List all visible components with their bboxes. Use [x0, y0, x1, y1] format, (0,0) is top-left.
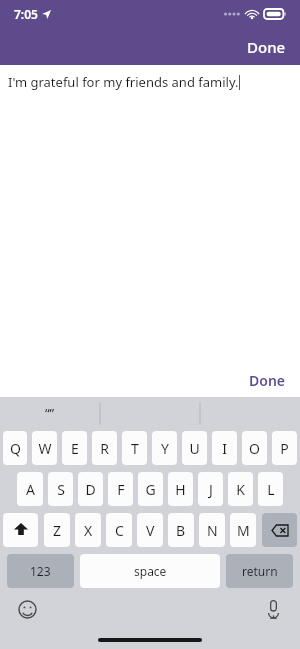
- staticText: N: [207, 521, 218, 540]
- button[interactable]: I: [212, 431, 237, 465]
- button[interactable]: A: [17, 472, 43, 506]
- button[interactable]: X: [75, 513, 101, 547]
- staticText: return: [242, 563, 278, 579]
- button[interactable]: Shift: [3, 513, 38, 547]
- button[interactable]: J: [198, 472, 223, 506]
- button[interactable]: E: [62, 431, 87, 465]
- button[interactable]: D: [78, 472, 103, 506]
- staticText: O: [249, 439, 260, 458]
- button[interactable]: “”: [0, 397, 100, 429]
- staticText: M: [237, 521, 250, 540]
- button[interactable]: M: [230, 513, 256, 547]
- button[interactable]: Z: [44, 513, 70, 547]
- staticText: Q: [10, 439, 21, 458]
- staticText: U: [189, 439, 200, 458]
- button[interactable]: Dictate: [256, 592, 290, 626]
- button[interactable]: T: [122, 431, 147, 465]
- button[interactable]: B: [168, 513, 194, 547]
- staticText: 7:05: [14, 6, 38, 22]
- staticText: J: [209, 480, 213, 499]
- staticText: Done: [249, 371, 286, 390]
- staticText: S: [57, 480, 65, 499]
- staticText: A: [26, 480, 35, 499]
- staticText: P: [280, 439, 289, 458]
- button[interactable]: Done: [233, 29, 300, 65]
- staticText: Y: [161, 439, 169, 458]
- staticText: E: [71, 439, 79, 458]
- button[interactable]: space: [80, 554, 220, 588]
- button[interactable]: R: [92, 431, 117, 465]
- button[interactable]: C: [106, 513, 132, 547]
- button[interactable]: return: [226, 554, 293, 588]
- staticText: V: [146, 521, 155, 540]
- button[interactable]: Backspace: [262, 513, 297, 547]
- button[interactable]: W: [32, 431, 57, 465]
- button[interactable]: Done: [235, 364, 300, 397]
- button[interactable]: Emoji: [10, 592, 44, 626]
- button[interactable]: H: [168, 472, 193, 506]
- staticText: R: [100, 439, 109, 458]
- staticText: F: [117, 480, 125, 499]
- staticText: K: [236, 480, 245, 499]
- staticText: C: [115, 521, 124, 540]
- staticText: T: [131, 439, 139, 458]
- staticText: B: [176, 521, 186, 540]
- staticText: X: [84, 521, 93, 540]
- staticText: I'm grateful for my friends and family.: [8, 73, 239, 91]
- button[interactable]: 123: [7, 554, 74, 588]
- staticText: H: [175, 480, 186, 499]
- button[interactable]: V: [137, 513, 163, 547]
- staticText: “”: [45, 405, 55, 421]
- staticText: L: [267, 480, 275, 499]
- staticText: G: [145, 480, 156, 499]
- staticText: space: [134, 563, 167, 579]
- button[interactable]: Q: [3, 431, 27, 465]
- button[interactable]: S: [48, 472, 73, 506]
- staticText: D: [85, 480, 96, 499]
- staticText: Done: [247, 37, 286, 57]
- staticText: 123: [30, 563, 51, 579]
- button[interactable]: Y: [152, 431, 177, 465]
- button[interactable]: G: [138, 472, 163, 506]
- button[interactable]: O: [242, 431, 267, 465]
- staticText: Z: [53, 521, 62, 540]
- staticText: I: [222, 439, 227, 458]
- button[interactable]: U: [182, 431, 207, 465]
- staticText: W: [38, 439, 52, 458]
- button[interactable]: N: [199, 513, 225, 547]
- button[interactable]: L: [258, 472, 283, 506]
- button[interactable]: P: [272, 431, 297, 465]
- button[interactable]: K: [228, 472, 253, 506]
- button[interactable]: F: [108, 472, 133, 506]
